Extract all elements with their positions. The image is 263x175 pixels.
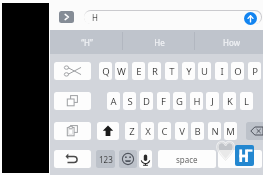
button[interactable]: N: [208, 122, 221, 140]
button[interactable]: Y: [182, 62, 195, 80]
staticText: He: [154, 37, 165, 48]
button[interactable]: L: [240, 92, 253, 110]
button[interactable]: Expand toolbar: [59, 11, 74, 23]
button[interactable]: T: [165, 62, 178, 80]
button[interactable]: H: [84, 11, 261, 24]
button[interactable]: O: [231, 62, 244, 80]
button[interactable]: U: [198, 62, 211, 80]
staticText: I: [220, 65, 224, 78]
staticText: H: [193, 95, 201, 108]
button[interactable]: H: [190, 92, 203, 110]
staticText: D: [143, 95, 150, 108]
staticText: L: [244, 95, 249, 108]
button[interactable]: J: [206, 92, 219, 110]
staticText: H: [92, 12, 98, 23]
button[interactable]: X: [141, 122, 154, 140]
staticText: G: [176, 95, 183, 108]
staticText: space: [176, 154, 198, 165]
staticText: U: [201, 65, 208, 78]
button[interactable]: M: [224, 122, 237, 140]
staticText: J: [211, 95, 214, 108]
button[interactable]: Q: [99, 62, 112, 80]
staticText: O: [234, 65, 242, 78]
staticText: K: [227, 95, 233, 108]
button[interactable]: G: [173, 92, 186, 110]
staticText: V: [179, 125, 185, 138]
button[interactable]: I: [215, 62, 228, 80]
button[interactable]: Return: [218, 150, 262, 168]
button[interactable]: C: [158, 122, 171, 140]
button[interactable]: W: [115, 62, 128, 80]
button[interactable]: Undo: [54, 150, 91, 168]
staticText: “H”: [81, 37, 93, 48]
staticText: B: [194, 125, 201, 138]
button[interactable]: Paste: [54, 122, 91, 140]
button[interactable]: How: [196, 30, 263, 54]
button[interactable]: 123: [96, 150, 115, 168]
staticText: How: [223, 37, 240, 48]
button[interactable]: D: [140, 92, 153, 110]
staticText: W: [117, 65, 126, 78]
button[interactable]: Copy: [54, 92, 91, 110]
button[interactable]: Z: [125, 122, 138, 140]
staticText: Q: [102, 65, 110, 78]
button[interactable]: Cut: [54, 62, 91, 80]
button[interactable]: Emoji: [119, 150, 137, 168]
button[interactable]: He: [124, 30, 194, 54]
staticText: C: [161, 125, 168, 138]
button[interactable]: space: [158, 150, 216, 168]
staticText: A: [110, 95, 117, 108]
button[interactable]: F: [157, 92, 170, 110]
staticText: R: [152, 65, 158, 78]
staticText: S: [127, 95, 133, 108]
button[interactable]: P: [248, 62, 261, 80]
staticText: Z: [129, 125, 135, 138]
staticText: X: [145, 125, 151, 138]
button[interactable]: K: [223, 92, 236, 110]
button[interactable]: V: [175, 122, 188, 140]
button[interactable]: Voice input: [139, 150, 152, 168]
staticText: T: [169, 65, 175, 78]
button[interactable]: S: [123, 92, 136, 110]
staticText: M: [226, 125, 235, 138]
staticText: N: [211, 125, 219, 138]
staticText: P: [252, 65, 258, 78]
button[interactable]: R: [148, 62, 161, 80]
button[interactable]: Shift: [97, 122, 119, 140]
staticText: 123: [99, 154, 113, 165]
staticText: Y: [186, 65, 192, 78]
staticText: F: [161, 95, 166, 108]
button[interactable]: E: [132, 62, 145, 80]
button[interactable]: “H”: [52, 30, 122, 54]
button[interactable]: B: [191, 122, 204, 140]
staticText: E: [136, 65, 142, 78]
button[interactable]: Backspace: [246, 122, 263, 140]
button[interactable]: Send: [244, 12, 257, 25]
button[interactable]: A: [107, 92, 120, 110]
